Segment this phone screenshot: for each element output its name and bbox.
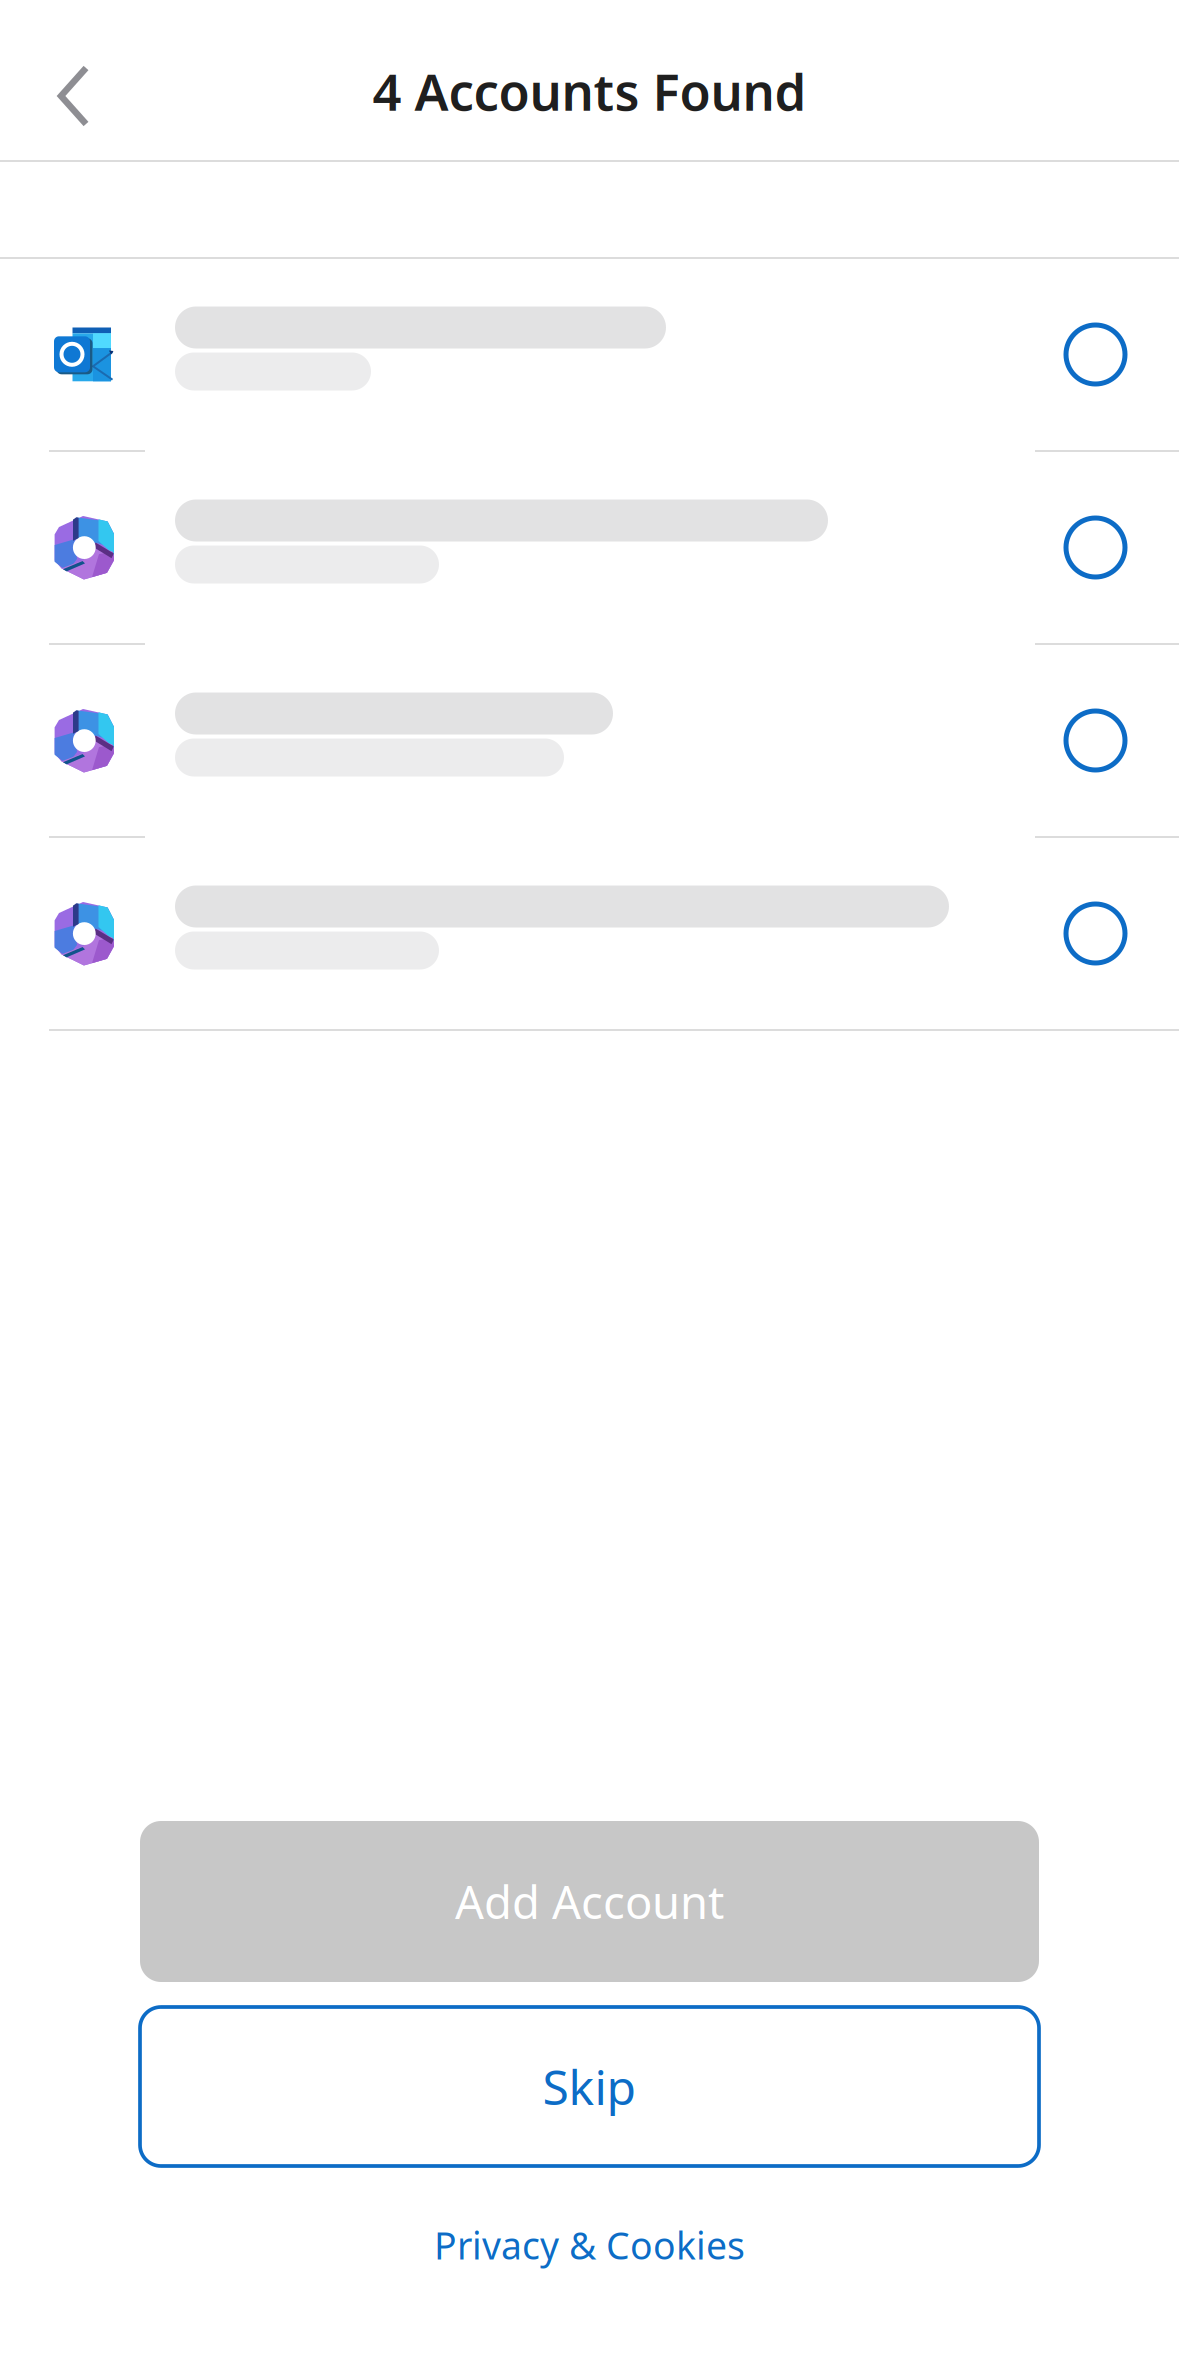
button[interactable] <box>0 259 1179 450</box>
staticText: 4 Accounts Found <box>372 57 806 125</box>
button[interactable]: Add Account <box>140 1821 1039 1982</box>
staticText: Privacy & Cookies <box>434 2220 745 2270</box>
button[interactable] <box>0 645 1179 836</box>
staticText: Add Account <box>455 1871 724 1932</box>
staticText: Skip <box>542 2055 636 2118</box>
button[interactable]: Skip <box>140 2007 1039 2166</box>
button[interactable] <box>0 452 1179 643</box>
button[interactable]: Privacy & Cookies <box>420 2219 759 2271</box>
button[interactable]: Back <box>0 24 111 135</box>
button[interactable] <box>0 838 1179 1029</box>
